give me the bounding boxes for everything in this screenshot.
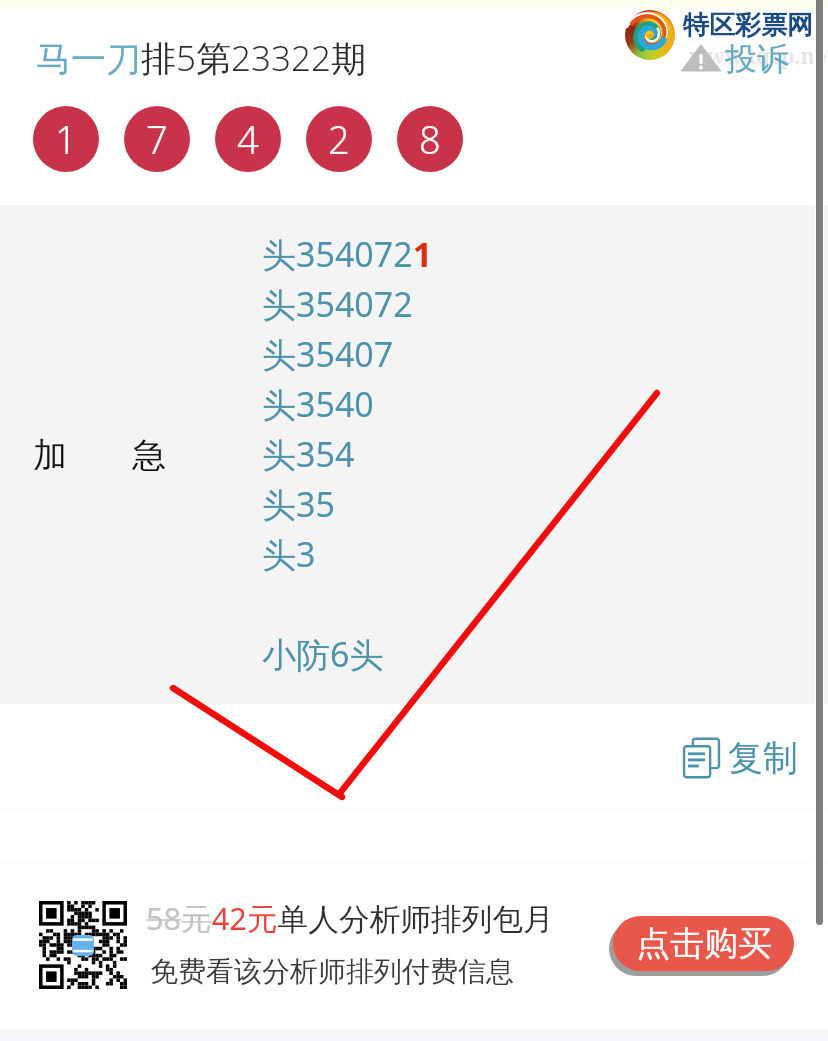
other: 二维码 <box>39 901 127 989</box>
button[interactable]: 投诉 <box>679 42 723 74</box>
staticText: 头3 <box>262 531 316 577</box>
staticText: 小防6头 <box>262 631 384 677</box>
staticText: 特区彩票网 <box>683 9 813 42</box>
button[interactable]: 点击购买 <box>613 916 794 971</box>
staticText: 头3540 <box>262 381 374 427</box>
staticText: 58元42元单人分析师排列包月 <box>146 897 554 939</box>
staticText: 投诉 <box>725 39 789 79</box>
button[interactable]: 投诉 <box>725 39 789 79</box>
staticText: 8 <box>419 113 441 165</box>
staticText: 头35407 <box>262 331 394 377</box>
button[interactable]: 7 <box>124 106 190 172</box>
staticText: 4 <box>237 113 259 165</box>
staticText: 复制 <box>728 736 798 780</box>
staticText: 7 <box>146 113 168 165</box>
button[interactable] <box>0 863 828 1029</box>
button[interactable] <box>0 205 828 704</box>
staticText: 2 <box>328 113 350 165</box>
staticText: 头3540721 <box>262 231 433 277</box>
staticText: 头354 <box>262 431 355 477</box>
button[interactable]: 4 <box>215 106 281 172</box>
button[interactable]: 1 <box>33 106 99 172</box>
button[interactable]: 复制 <box>682 736 798 780</box>
staticText: 点击购买 <box>636 922 772 965</box>
button[interactable]: 2 <box>306 106 372 172</box>
staticText: www.tqcp.net <box>689 42 828 71</box>
staticText: 免费看该分析师排列付费信息 <box>150 954 514 989</box>
staticText: 头354072 <box>262 281 413 327</box>
button[interactable]: 8 <box>397 106 463 172</box>
staticText: 急 <box>132 434 166 477</box>
staticText: 1 <box>55 113 77 165</box>
staticText: 头35 <box>262 481 335 527</box>
staticText: 马一刀排5第23322期 <box>36 34 366 82</box>
staticText: 加 <box>33 434 67 477</box>
